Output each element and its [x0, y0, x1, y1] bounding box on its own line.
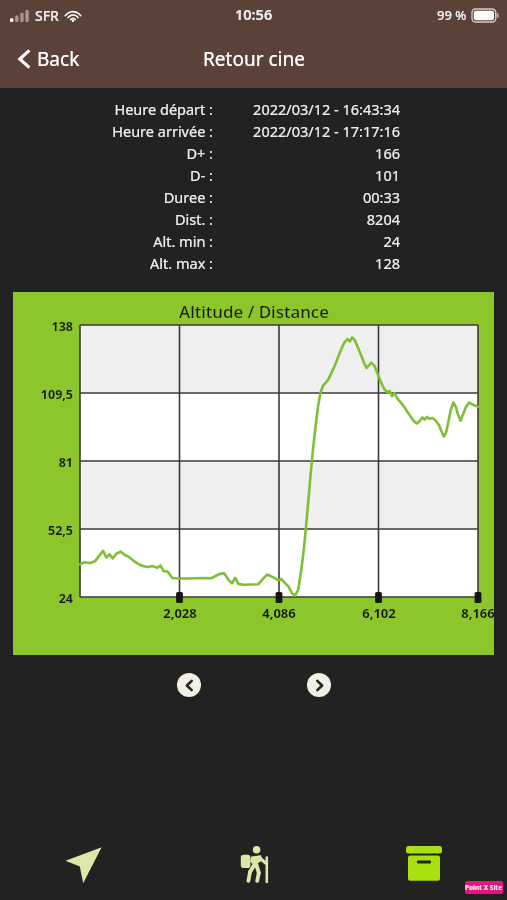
staticText: 8,166 — [442, 604, 507, 622]
staticText: 101 — [221, 165, 400, 185]
staticText: 2,028 — [144, 604, 216, 622]
staticText: D+ : — [0, 143, 213, 163]
staticText: 109,5 — [13, 386, 73, 403]
staticText: Alt. max : — [0, 253, 213, 273]
staticText: Point X Site — [465, 883, 503, 892]
staticText: 8204 — [221, 209, 400, 229]
staticText: 24 — [13, 590, 73, 607]
staticText: 166 — [221, 143, 400, 163]
button[interactable]: Archive — [392, 832, 456, 896]
button[interactable]: Navigate — [52, 832, 116, 896]
staticText: 99 % — [437, 6, 467, 24]
staticText: Dist. : — [0, 209, 213, 229]
staticText: 24 — [221, 231, 400, 251]
button[interactable]: Previous — [177, 673, 201, 697]
staticText: SFR — [35, 6, 59, 25]
staticText: 128 — [221, 253, 400, 273]
staticText: Altitude / Distance — [179, 300, 329, 323]
staticText: D- : — [0, 165, 213, 185]
staticText: Heure arrivée : — [0, 121, 213, 141]
button[interactable]: Next — [307, 673, 331, 697]
staticText: Heure départ : — [0, 99, 213, 119]
staticText: 81 — [13, 454, 73, 471]
staticText: 138 — [13, 318, 73, 335]
staticText: Alt. min : — [0, 231, 213, 251]
button[interactable]: Hiking track — [222, 832, 286, 896]
staticText: 4,086 — [243, 604, 315, 622]
staticText: 6,102 — [343, 604, 415, 622]
button[interactable]: Point X site badge — [465, 881, 503, 894]
staticText: 00:33 — [221, 187, 400, 207]
staticText: Duree : — [0, 187, 213, 207]
staticText: Back — [37, 46, 80, 72]
staticText: 10:56 — [235, 4, 273, 24]
staticText: 2022/03/12 - 16:43:34 — [221, 99, 400, 119]
staticText: 52,5 — [13, 522, 73, 539]
staticText: Retour cine — [203, 46, 305, 72]
button[interactable]: Altitude / Distance — [13, 292, 494, 655]
staticText: 2022/03/12 - 17:17:16 — [221, 121, 400, 141]
button[interactable]: Back — [0, 38, 94, 80]
